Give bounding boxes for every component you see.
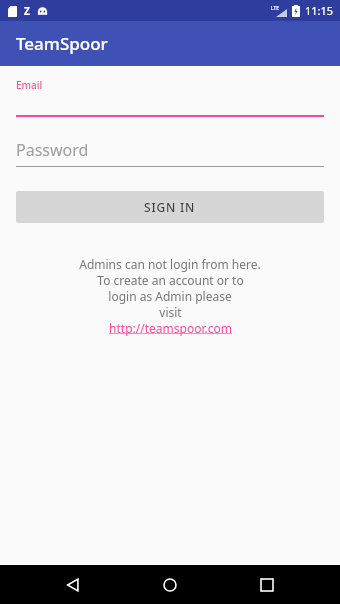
staticText: To create an account or to [97,272,244,288]
staticText: Z [24,4,30,18]
button[interactable]: Home [149,565,191,604]
button[interactable]: Recent apps [246,565,288,604]
staticText: Password [16,139,89,161]
button[interactable]: Password [16,139,324,167]
staticText: LTE [271,5,280,12]
button[interactable]: Back [52,565,94,604]
button[interactable]: SIGN IN [16,191,324,223]
staticText: TeamSpoor [16,32,108,55]
button[interactable]: http://teamspoor.com [109,320,232,336]
staticText: Email [16,78,43,92]
staticText: visit [159,304,182,320]
staticText: login as Admin please [108,288,232,304]
button[interactable]: Email [16,78,324,117]
staticText: SIGN IN [144,199,196,215]
staticText: 11:15 [305,3,334,18]
staticText: Admins can not login from here. [79,256,261,272]
